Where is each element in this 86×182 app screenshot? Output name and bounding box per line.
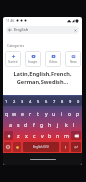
button[interactable]: 4 <box>26 96 34 106</box>
button[interactable]: 2 <box>10 96 18 106</box>
button[interactable]: 6 <box>42 96 50 106</box>
staticText: c <box>33 132 36 139</box>
button[interactable]: h <box>46 120 54 129</box>
staticText: i <box>61 110 63 117</box>
button[interactable]: b <box>46 130 54 141</box>
button[interactable]: 7 <box>50 96 58 106</box>
button[interactable]: j <box>54 120 62 129</box>
button[interactable]: Emoji <box>13 142 21 152</box>
staticText: 0 <box>77 99 80 104</box>
staticText: 5 <box>37 99 40 104</box>
staticText: Images <box>28 60 38 64</box>
staticText: 7 <box>53 99 56 104</box>
staticText: w <box>12 110 17 117</box>
button[interactable]: c <box>30 130 38 141</box>
button[interactable]: 3 <box>18 96 26 106</box>
staticText: g <box>40 121 44 128</box>
button[interactable]: a <box>7 120 14 129</box>
staticText: English <box>14 27 29 33</box>
button[interactable]: y <box>42 108 50 118</box>
staticText: d <box>24 121 28 128</box>
button[interactable]: g <box>38 120 46 129</box>
button[interactable]: Switch language <box>4 142 11 152</box>
button[interactable]: 0 <box>74 96 82 106</box>
button[interactable]: f <box>30 120 38 129</box>
button[interactable]: v <box>38 130 46 141</box>
staticText: e <box>21 110 24 117</box>
staticText: 9 <box>69 99 72 104</box>
staticText: m <box>64 132 69 139</box>
staticText: h <box>48 121 52 128</box>
button[interactable]: i <box>58 108 66 118</box>
other: Clear <box>74 29 77 32</box>
button[interactable]: z <box>14 130 22 141</box>
button[interactable]: w <box>10 108 18 118</box>
button[interactable]: l <box>70 120 78 129</box>
staticText: u <box>52 110 56 117</box>
button[interactable]: 9 <box>66 96 74 106</box>
staticText: y <box>45 110 48 117</box>
staticText: Videos <box>49 60 58 64</box>
button[interactable]: Enter <box>71 142 81 152</box>
staticText: k <box>65 121 68 128</box>
staticText: q <box>5 110 9 117</box>
button[interactable]: n <box>54 130 62 141</box>
staticText: 2 <box>13 99 16 104</box>
staticText: News <box>70 60 77 64</box>
button[interactable]: s <box>14 120 22 129</box>
staticText: Starred <box>8 60 18 64</box>
button[interactable]: x <box>22 130 30 141</box>
button[interactable]: 8 <box>58 96 66 106</box>
staticText: p <box>76 110 80 117</box>
staticText: English (US) <box>33 145 49 149</box>
button[interactable]: Images <box>25 51 41 67</box>
staticText: t <box>37 110 39 117</box>
staticText: n <box>56 132 60 139</box>
button[interactable]: 1 <box>3 96 10 106</box>
button[interactable]: Starred <box>5 51 21 67</box>
staticText: x <box>25 132 28 139</box>
staticText: s <box>17 121 20 128</box>
button[interactable]: News <box>65 51 81 67</box>
button[interactable]: e <box>18 108 26 118</box>
button[interactable]: p <box>74 108 82 118</box>
staticText: 6 <box>45 99 48 104</box>
staticText: 1 <box>5 99 8 104</box>
button[interactable]: English (US) <box>23 142 59 152</box>
button[interactable]: d <box>22 120 30 129</box>
staticText: Latin,English,French, German,Swedish... <box>3 70 82 85</box>
staticText: a <box>9 121 12 128</box>
button[interactable]: o <box>66 108 74 118</box>
button[interactable]: u <box>50 108 58 118</box>
staticText: z <box>17 132 20 139</box>
button[interactable]: Back <box>6 26 79 34</box>
button[interactable]: t <box>34 108 42 118</box>
staticText: b <box>48 132 52 139</box>
staticText: r <box>29 110 32 117</box>
staticText: 3 <box>21 99 24 104</box>
other: Back <box>8 28 12 32</box>
staticText: j <box>57 121 59 128</box>
button[interactable]: q <box>3 108 10 118</box>
staticText: v <box>41 132 44 139</box>
button[interactable]: m <box>62 130 70 141</box>
button[interactable]: Voice input <box>61 142 69 152</box>
button[interactable]: Videos <box>45 51 61 67</box>
staticText: 8 <box>61 99 64 104</box>
button[interactable]: k <box>62 120 70 129</box>
button[interactable]: 5 <box>34 96 42 106</box>
button[interactable]: Shift <box>4 131 13 140</box>
staticText: o <box>68 110 72 117</box>
staticText: Categories <box>7 43 25 48</box>
staticText: l <box>73 121 75 128</box>
staticText: f <box>33 121 35 128</box>
staticText: 4 <box>29 99 32 104</box>
button[interactable]: Backspace <box>71 131 81 140</box>
button[interactable]: r <box>26 108 34 118</box>
staticText: 11:46 <box>6 19 15 23</box>
